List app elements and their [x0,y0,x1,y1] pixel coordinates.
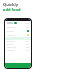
button[interactable] [7,47,29,48]
button[interactable] [5,63,31,68]
button[interactable] [7,27,29,28]
button[interactable] [7,22,31,24]
button[interactable] [7,44,29,45]
button[interactable] [7,30,29,32]
button[interactable] [7,41,29,42]
staticText: add food [3,7,21,12]
button[interactable] [7,34,29,36]
button[interactable] [7,50,29,51]
staticText: Quickly [3,2,18,7]
